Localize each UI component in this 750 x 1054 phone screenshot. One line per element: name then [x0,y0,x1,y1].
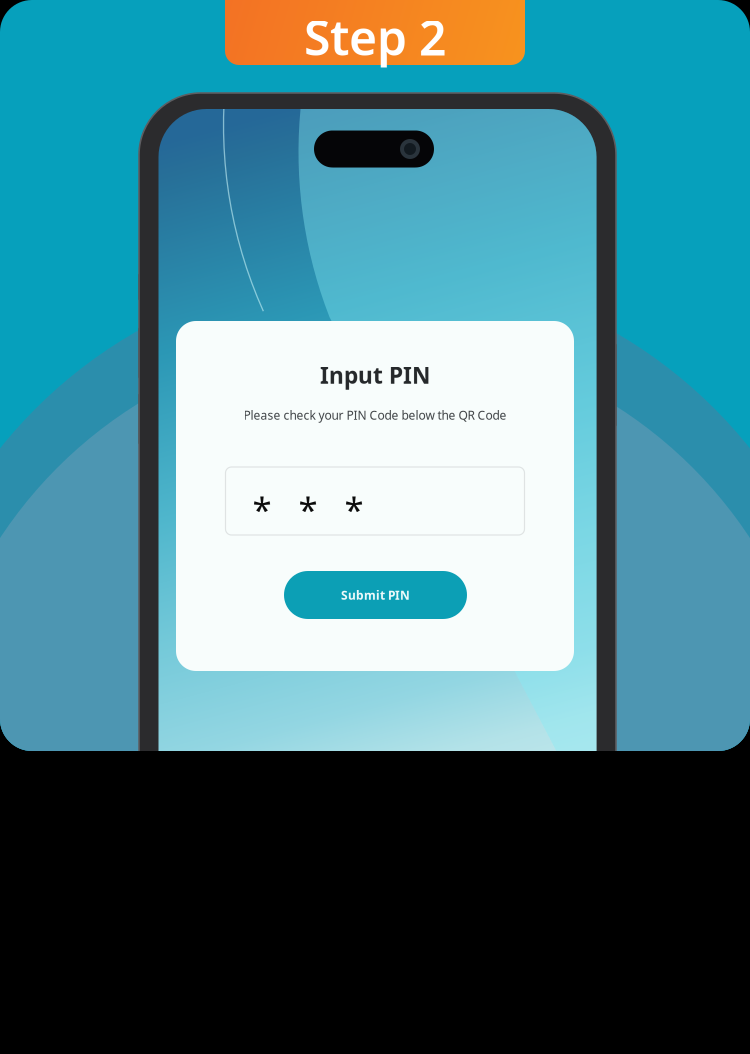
staticText: * [252,486,271,532]
button[interactable]: Step 2 [225,0,525,72]
staticText: Please check your PIN Code below the QR … [243,407,506,423]
button[interactable]: Submit PIN [284,571,467,619]
staticText: * [298,486,317,532]
staticText: Submit PIN [341,587,410,603]
staticText: Step 2 [304,5,446,69]
staticText: * [344,486,363,532]
staticText: Input PIN [320,360,430,390]
